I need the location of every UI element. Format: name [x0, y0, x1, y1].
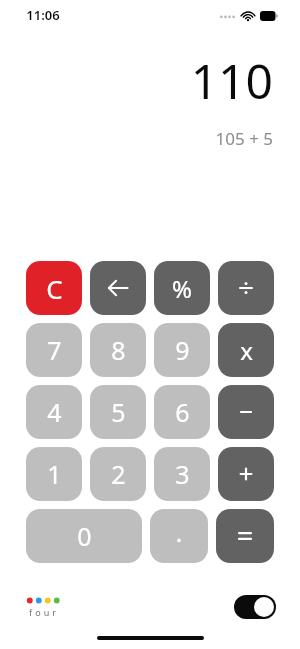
- staticText: 3: [175, 457, 190, 491]
- staticText: 4: [47, 395, 62, 429]
- staticText: 5: [111, 395, 126, 429]
- button[interactable]: x: [218, 323, 274, 377]
- staticText: 105 + 5: [0, 127, 273, 150]
- staticText: 11:06: [26, 6, 60, 24]
- staticText: 7: [47, 333, 62, 367]
- button[interactable]: C: [26, 261, 82, 315]
- staticText: 6: [175, 395, 190, 429]
- button[interactable]: Equals: [216, 509, 274, 563]
- button[interactable]: 9: [154, 323, 210, 377]
- button[interactable]: 6: [154, 385, 210, 439]
- staticText: 8: [111, 333, 126, 367]
- button[interactable]: Minus: [218, 385, 274, 439]
- button[interactable]: 5: [90, 385, 146, 439]
- button[interactable]: 4: [26, 385, 82, 439]
- staticText: 9: [175, 333, 190, 367]
- button[interactable]: 2: [90, 447, 146, 501]
- button[interactable]: 3: [154, 447, 210, 501]
- button[interactable]: Toggle: [234, 595, 276, 619]
- button[interactable]: four logo: [26, 597, 62, 618]
- button[interactable]: 7: [26, 323, 82, 377]
- staticText: x: [240, 334, 253, 367]
- button[interactable]: 8: [90, 323, 146, 377]
- button[interactable]: Backspace: [90, 261, 146, 315]
- button[interactable]: %: [154, 261, 210, 315]
- button[interactable]: Plus: [218, 447, 274, 501]
- button[interactable]: 1: [26, 447, 82, 501]
- staticText: 2: [111, 457, 126, 491]
- staticText: four: [29, 606, 59, 618]
- staticText: C: [46, 271, 63, 306]
- button[interactable]: Decimal point: [150, 509, 208, 563]
- staticText: 0: [77, 519, 92, 553]
- staticText: 1: [47, 457, 62, 491]
- staticText: %: [172, 272, 192, 305]
- button[interactable]: Divide: [218, 261, 274, 315]
- button[interactable]: 0: [26, 509, 142, 563]
- staticText: 110: [0, 48, 273, 113]
